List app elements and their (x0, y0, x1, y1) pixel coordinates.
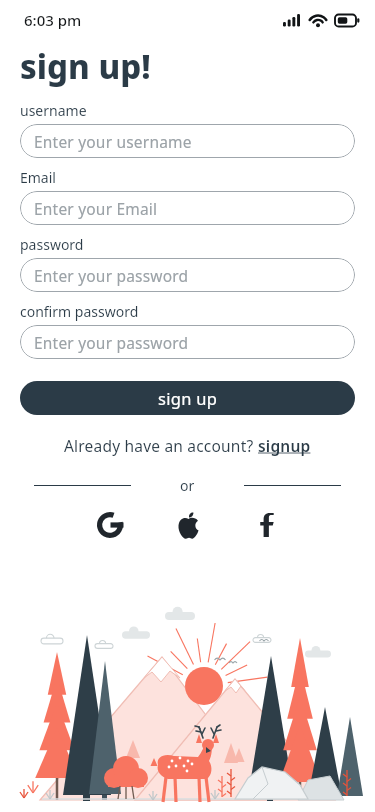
staticText: Enter your Email (34, 198, 158, 219)
button[interactable] (173, 510, 203, 540)
staticText: Already have an account? (64, 435, 258, 456)
staticText: password (20, 235, 84, 254)
button[interactable]: signup (258, 435, 311, 456)
button[interactable] (95, 510, 125, 540)
button[interactable]: sign up (20, 381, 355, 415)
staticText: Email (20, 168, 56, 187)
staticText: Enter your password (34, 332, 189, 353)
button[interactable] (251, 510, 281, 540)
staticText: Enter your username (34, 131, 192, 152)
staticText: sign up (158, 387, 218, 409)
button[interactable]: Enter your password (20, 325, 355, 359)
staticText: 6:03 pm (24, 10, 82, 30)
staticText: username (20, 101, 87, 120)
staticText: Enter your password (34, 265, 189, 286)
button[interactable]: Enter your password (20, 258, 355, 292)
staticText: or (180, 476, 195, 495)
button[interactable]: Enter your username (20, 124, 355, 158)
staticText: confirm password (20, 302, 139, 321)
staticText: sign up! (20, 44, 151, 89)
button[interactable]: Enter your Email (20, 191, 355, 225)
